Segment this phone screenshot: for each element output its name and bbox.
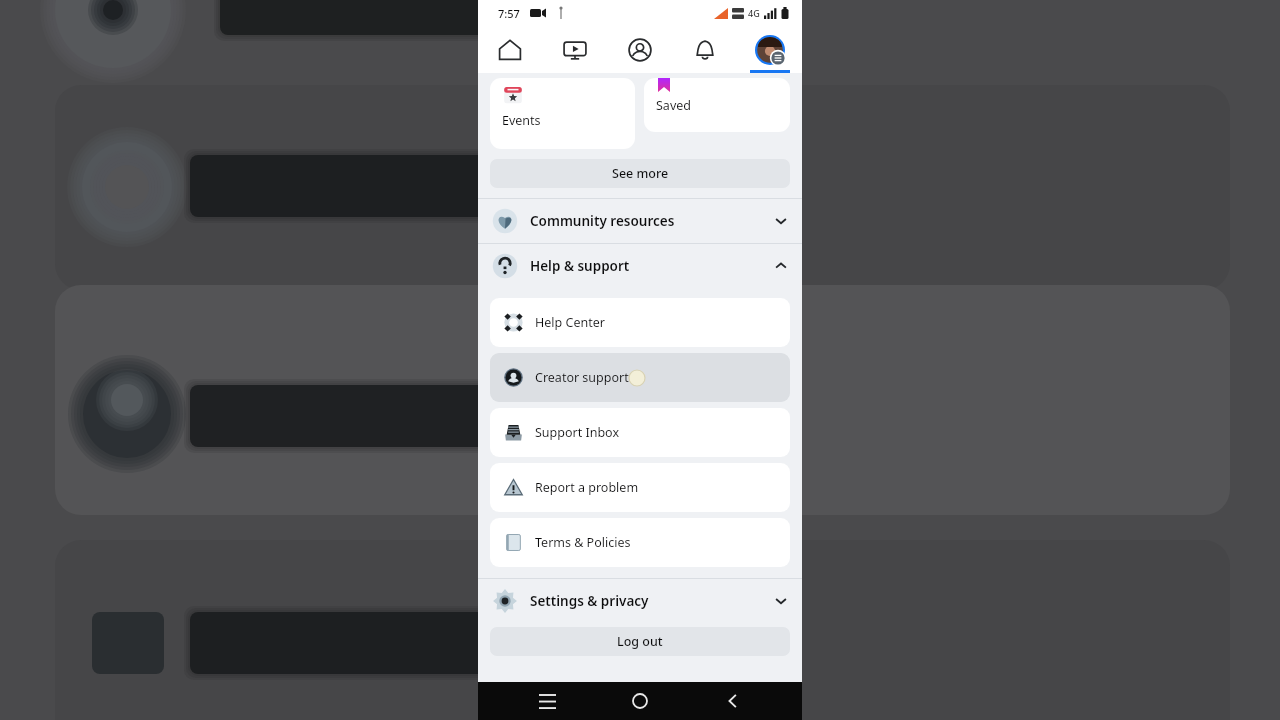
button[interactable]: Profile [607, 26, 672, 73]
button[interactable]: Recents [523, 682, 571, 720]
staticText: Help Center [535, 314, 605, 331]
staticText: Log out [617, 633, 663, 650]
staticText: 4G [748, 7, 760, 19]
button[interactable]: Home [616, 682, 664, 720]
button[interactable]: Log out [490, 627, 790, 656]
button[interactable]: Menu [737, 26, 802, 73]
button[interactable]: Help Center [490, 298, 790, 347]
staticText: Report a problem [535, 479, 639, 496]
button[interactable]: Settings & privacy [478, 579, 802, 623]
button[interactable]: Help & support [478, 244, 802, 288]
button[interactable]: See more [490, 159, 790, 188]
staticText: See more [612, 165, 669, 182]
button[interactable]: Back [709, 682, 757, 720]
staticText: 7:57 [498, 6, 520, 21]
button[interactable]: Saved [644, 78, 790, 132]
button[interactable]: Terms & Policies [490, 518, 790, 567]
button[interactable]: Notifications [672, 26, 737, 73]
button[interactable]: Home [478, 26, 542, 73]
staticText: Community resources [530, 212, 774, 230]
staticText: Support Inbox [535, 424, 620, 441]
button[interactable]: Support Inbox [490, 408, 790, 457]
staticText: Settings & privacy [530, 592, 774, 610]
staticText: Terms & Policies [535, 534, 631, 551]
staticText: Help & support [530, 257, 774, 275]
button[interactable]: Events [490, 78, 635, 149]
button[interactable]: Video [542, 26, 607, 73]
button[interactable]: Report a problem [490, 463, 790, 512]
button[interactable]: Community resources [478, 199, 802, 243]
staticText: Creator support [535, 369, 629, 386]
button[interactable]: Creator support [490, 353, 790, 402]
staticText: Events [502, 112, 541, 129]
staticText: Saved [656, 97, 691, 114]
